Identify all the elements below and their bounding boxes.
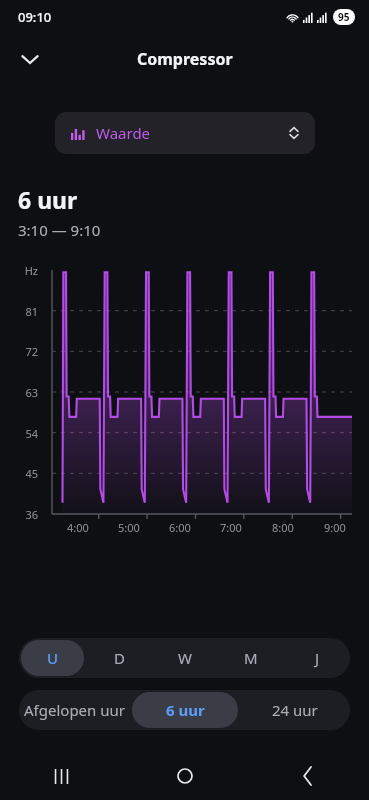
staticText: 4:00 xyxy=(67,520,89,535)
staticText: Waarde xyxy=(96,123,151,143)
button[interactable]: U xyxy=(21,640,84,676)
button[interactable]: Collapse xyxy=(8,37,52,81)
button[interactable]: D xyxy=(88,640,150,676)
staticText: 45 xyxy=(0,466,38,481)
staticText: Hz xyxy=(0,263,38,278)
staticText: 5:00 xyxy=(118,520,140,535)
button[interactable]: Afgelopen uur xyxy=(21,692,128,728)
staticText: 81 xyxy=(0,304,38,319)
button[interactable]: Home xyxy=(123,752,246,800)
staticText: J xyxy=(315,648,320,668)
staticText: 7:00 xyxy=(220,520,242,535)
staticText: Afgelopen uur xyxy=(24,700,125,720)
staticText: 9:00 xyxy=(324,520,346,535)
staticText: 36 xyxy=(0,507,38,522)
staticText: 6 uur xyxy=(166,700,205,720)
button[interactable]: M xyxy=(220,640,282,676)
staticText: M xyxy=(244,648,258,668)
staticText: Compressor xyxy=(137,48,233,70)
button[interactable]: Back xyxy=(246,752,369,800)
staticText: W xyxy=(178,648,192,668)
staticText: 6 uur xyxy=(18,184,78,215)
staticText: 24 uur xyxy=(272,700,318,720)
button[interactable]: J xyxy=(286,640,348,676)
staticText: D xyxy=(114,648,125,668)
staticText: 6:00 xyxy=(169,520,191,535)
staticText: U xyxy=(47,648,59,668)
staticText: 3:10 — 9:10 xyxy=(18,220,101,240)
button[interactable]: W xyxy=(154,640,216,676)
button[interactable]: 24 uur xyxy=(242,692,348,728)
staticText: 72 xyxy=(0,344,38,359)
staticText: 95 xyxy=(338,10,350,24)
staticText: 8:00 xyxy=(272,520,294,535)
button[interactable]: Waarde xyxy=(55,112,315,154)
staticText: 63 xyxy=(0,385,38,400)
button[interactable]: 6 uur xyxy=(132,692,238,728)
button[interactable]: Recents xyxy=(0,752,123,800)
staticText: 54 xyxy=(0,426,38,441)
staticText: 09:10 xyxy=(18,8,52,26)
